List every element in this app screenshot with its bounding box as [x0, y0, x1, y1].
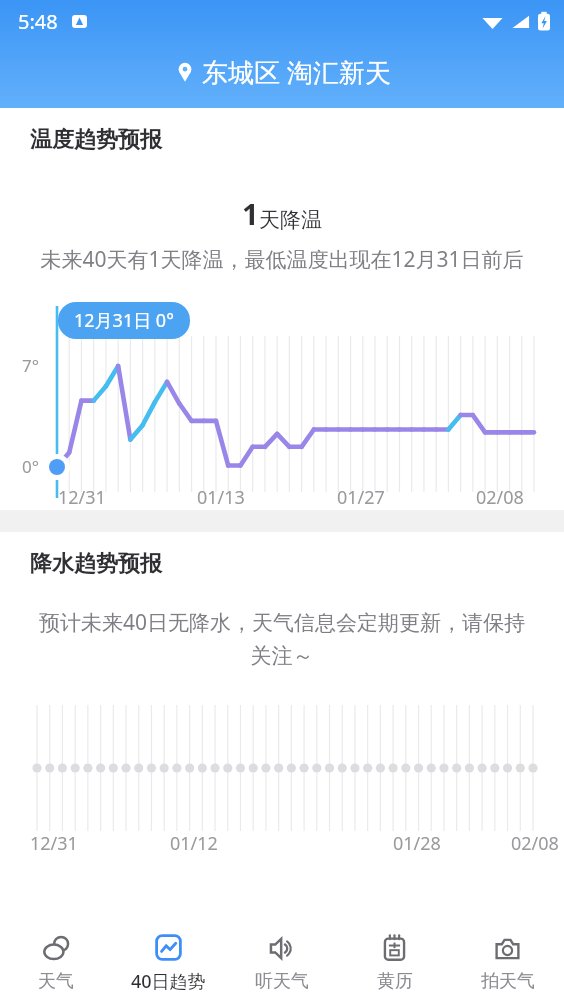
staticText: 5:48: [18, 8, 58, 35]
staticText: 01/28: [393, 831, 441, 856]
button[interactable]: 天气: [0, 920, 112, 1004]
staticText: 东城区 淘汇新天: [202, 54, 391, 90]
button[interactable]: 黄历: [338, 920, 451, 1004]
staticText: 1: [242, 194, 259, 233]
staticText: 12/31: [30, 831, 78, 856]
staticText: 12月31日 0°: [74, 308, 174, 333]
staticText: 温度趋势预报: [30, 126, 162, 154]
button[interactable]: 40日趋势: [112, 920, 225, 1004]
staticText: 天气: [38, 970, 74, 993]
staticText: 01/27: [337, 485, 385, 510]
staticText: 听天气: [255, 970, 309, 993]
button[interactable]: 12月31日 0°: [58, 302, 190, 339]
staticText: 0°: [22, 455, 39, 478]
staticText: 降水趋势预报: [30, 550, 162, 578]
staticText: 12/31: [58, 485, 106, 510]
staticText: 7°: [22, 354, 39, 377]
staticText: 40日趋势: [131, 969, 206, 994]
staticText: 天降温: [259, 207, 322, 233]
staticText: 02/08: [476, 485, 524, 510]
button[interactable]: 拍天气: [451, 920, 564, 1004]
button[interactable]: 东城区 淘汇新天: [0, 54, 564, 90]
staticText: 预计未来40日无降水，天气信息会定期更新，请保持关注～: [32, 608, 532, 669]
staticText: 拍天气: [481, 970, 535, 993]
staticText: 01/13: [197, 485, 245, 510]
staticText: 未来40天有1天降温，最低温度出现在12月31日前后: [28, 245, 536, 274]
staticText: 02/08: [511, 831, 559, 856]
staticText: 01/12: [170, 831, 218, 856]
button[interactable]: 听天气: [225, 920, 338, 1004]
staticText: 黄历: [377, 970, 413, 993]
